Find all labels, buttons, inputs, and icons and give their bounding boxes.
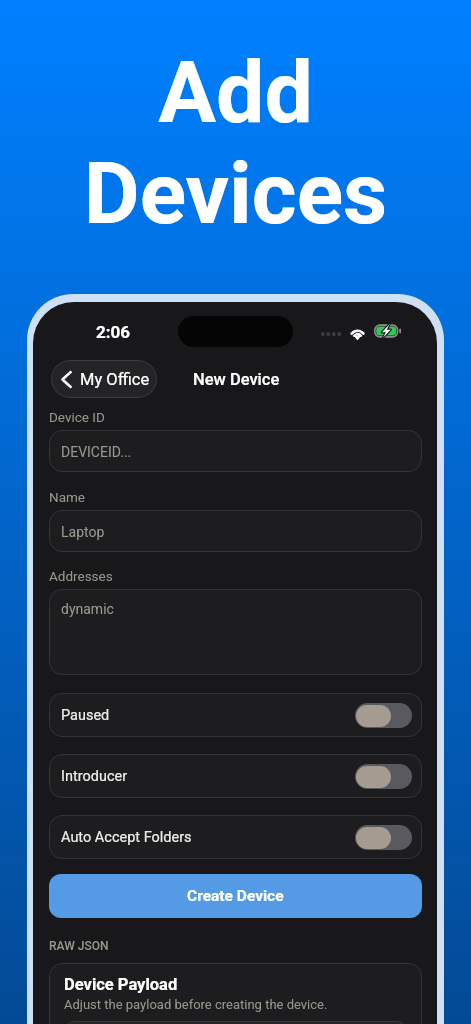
button[interactable]: Introducer (49, 754, 422, 798)
other: Back (61, 371, 72, 388)
staticText: New Device (193, 370, 280, 389)
button[interactable]: dynamic (49, 589, 422, 675)
other: Battery charging (374, 324, 401, 338)
staticText: Name (49, 489, 85, 505)
staticText: Add (0, 42, 471, 143)
other: Wi-Fi (348, 323, 367, 339)
button[interactable]: Create Device (49, 874, 422, 918)
button[interactable]: Laptop (49, 510, 422, 552)
staticText: dynamic (61, 601, 114, 617)
staticText: 2:06 (96, 322, 131, 342)
staticText: Devices (0, 143, 471, 244)
button[interactable]: DEVICEID... (49, 430, 422, 472)
staticText: Introducer (61, 768, 128, 785)
staticText: Addresses (49, 568, 113, 584)
staticText: Adjust the payload before creating the d… (64, 997, 328, 1012)
button[interactable]: Paused (49, 693, 422, 737)
staticText: Create Device (187, 887, 284, 905)
staticText: Paused (61, 707, 110, 724)
staticText: Device Payload (64, 975, 178, 994)
staticText: DEVICEID... (61, 444, 132, 460)
staticText: Laptop (61, 524, 105, 540)
staticText: Auto Accept Folders (61, 829, 192, 846)
staticText: Device ID (49, 409, 105, 425)
staticText: My Office (80, 370, 150, 389)
button[interactable]: Back (51, 360, 157, 398)
button[interactable]: Auto Accept Folders (49, 815, 422, 859)
staticText: RAW JSON (49, 939, 109, 953)
button[interactable]: Device Payload (49, 963, 422, 1024)
